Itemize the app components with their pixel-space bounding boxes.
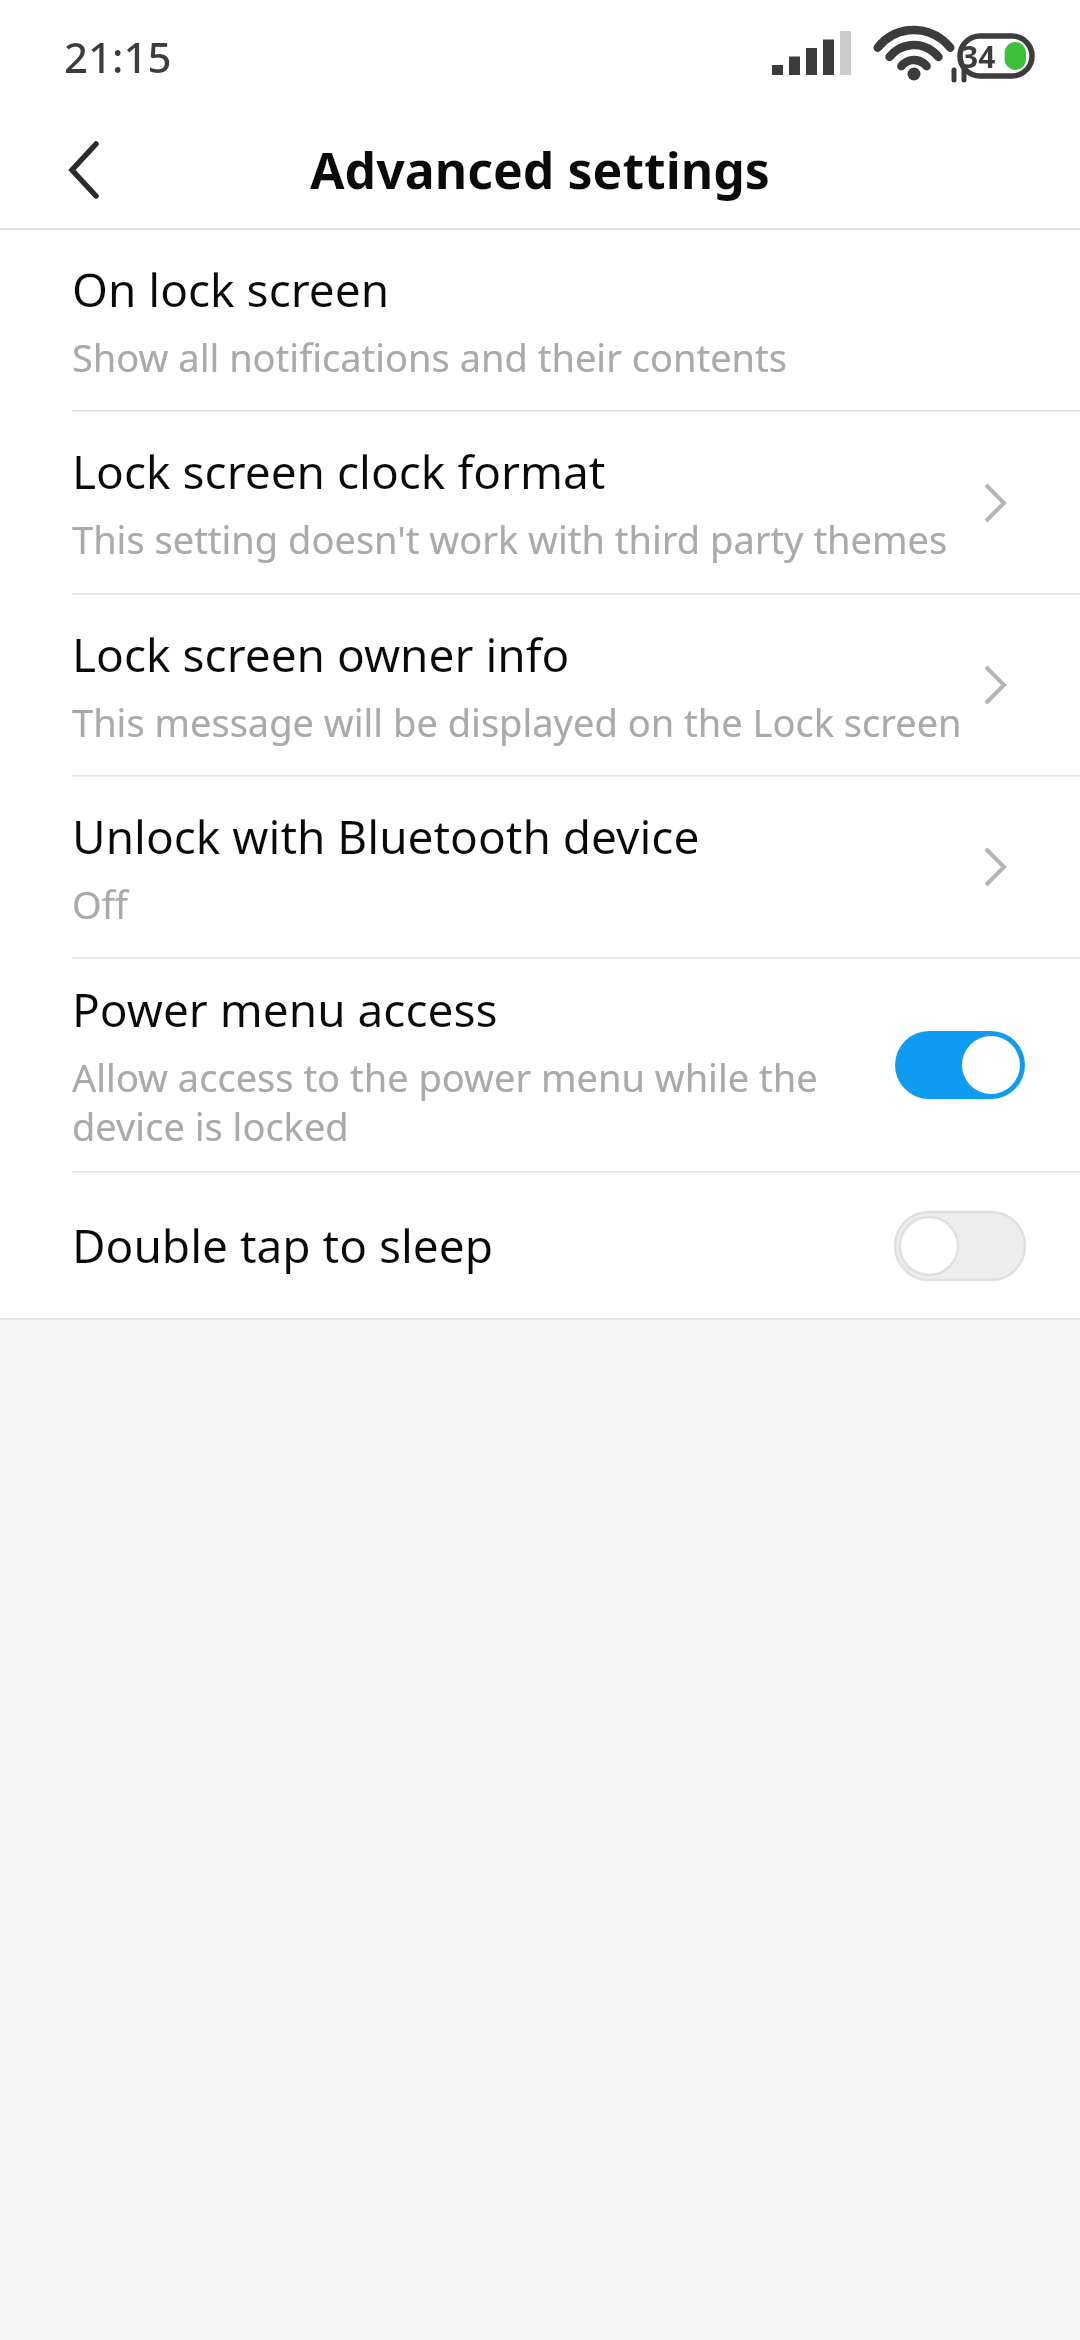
button[interactable]: Lock screen owner info [0,595,1080,775]
staticText: Advanced settings [310,136,770,204]
staticText: Lock screen clock format [72,440,606,503]
button[interactable]: Off [895,1206,1025,1286]
button[interactable]: Back [40,128,124,212]
staticText: Allow access to the power menu while the… [72,1051,872,1152]
staticText: This setting doesn't work with third par… [72,513,948,565]
button[interactable]: On lock screen [0,230,1080,410]
button[interactable]: Power menu access [0,959,1080,1171]
staticText: Show all notifications and their content… [72,331,787,383]
staticText: This message will be displayed on the Lo… [72,696,962,748]
staticText: Off [72,878,128,930]
button[interactable]: Double tap to sleep [0,1173,1080,1318]
staticText: Power menu access [72,978,498,1041]
button[interactable]: On [895,1025,1025,1105]
button[interactable]: Unlock with Bluetooth device [0,777,1080,957]
staticText: Lock screen owner info [72,623,570,686]
button[interactable]: Lock screen clock format [0,412,1080,593]
staticText: 21:15 [64,28,172,85]
staticText: 34 [961,36,996,77]
staticText: Unlock with Bluetooth device [72,805,700,868]
staticText: Double tap to sleep [72,1214,494,1277]
staticText: On lock screen [72,258,390,321]
